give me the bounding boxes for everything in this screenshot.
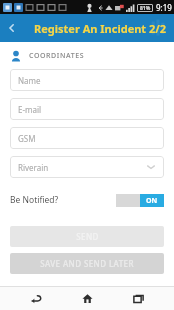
button[interactable]: Name [10, 69, 164, 91]
staticText: SEND [76, 231, 99, 242]
button[interactable]: Back [26, 288, 46, 308]
button[interactable]: GSM [10, 127, 164, 149]
staticText: Riverain [18, 162, 49, 173]
button[interactable]: Recent apps [128, 288, 148, 308]
button[interactable]: Back [0, 16, 24, 40]
staticText: 9:19 [156, 2, 172, 13]
staticText: GSM [18, 133, 36, 144]
staticText: Be Notified? [10, 194, 59, 206]
staticText: ON [146, 196, 158, 206]
button[interactable]: Riverain [10, 156, 164, 178]
staticText: 81% [140, 5, 151, 12]
button[interactable]: Be Notified toggle, on [116, 194, 164, 207]
staticText: COORDINATES [29, 51, 85, 61]
button[interactable]: E-mail [10, 98, 164, 120]
staticText: SAVE AND SEND LATER [40, 258, 134, 269]
button[interactable]: Home [77, 288, 97, 308]
staticText: Register An Incident 2/2 [34, 21, 167, 36]
staticText: E-mail [18, 104, 42, 115]
button[interactable]: SAVE AND SEND LATER [10, 253, 164, 274]
staticText: Name [18, 75, 41, 86]
